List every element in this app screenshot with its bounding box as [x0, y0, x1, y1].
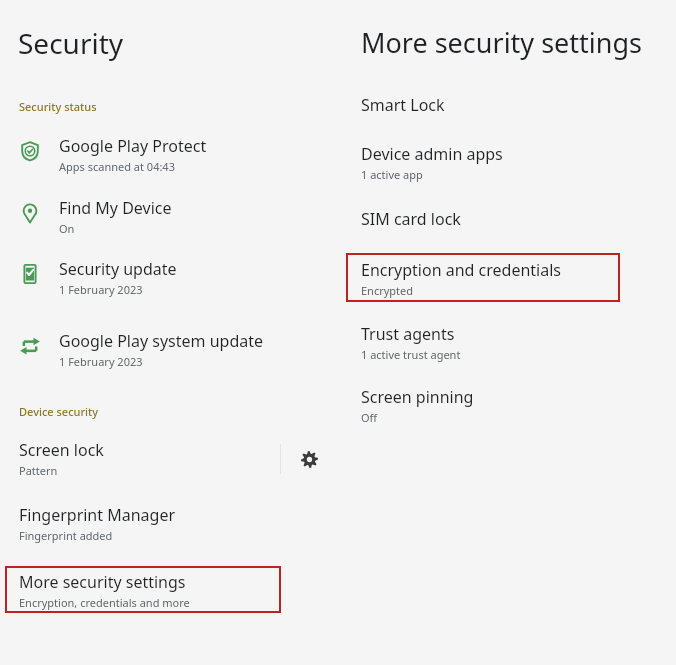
- staticText: Encrypted: [361, 283, 414, 298]
- staticText: Smart Lock: [361, 94, 445, 116]
- staticText: Fingerprint Manager: [19, 504, 176, 526]
- staticText: 1 February 2023: [59, 282, 143, 297]
- staticText: SIM card lock: [361, 208, 461, 230]
- staticText: Encryption, credentials and more: [19, 595, 190, 610]
- staticText: Google Play system update: [59, 330, 264, 352]
- staticText: Screen lock: [19, 439, 104, 461]
- staticText: Google Play Protect: [59, 135, 207, 157]
- button[interactable]: Find My Device: [0, 197, 320, 245]
- button[interactable]: Fingerprint Manager: [0, 501, 338, 547]
- button[interactable]: Google Play system update: [0, 330, 320, 378]
- staticText: Screen pinning: [361, 386, 474, 408]
- staticText: Encryption and credentials: [361, 259, 561, 281]
- staticText: More security settings: [19, 571, 186, 593]
- staticText: 1 active trust agent: [361, 347, 461, 362]
- button[interactable]: Trust agents: [338, 321, 668, 367]
- staticText: Security status: [19, 99, 97, 114]
- button[interactable]: Screen lock settings: [281, 436, 338, 482]
- button[interactable]: Screen lock: [0, 436, 280, 482]
- staticText: Device admin apps: [361, 143, 503, 165]
- staticText: Find My Device: [59, 197, 172, 219]
- staticText: 1 active app: [361, 167, 423, 182]
- button[interactable]: Security update: [0, 258, 320, 306]
- staticText: Security: [18, 24, 124, 62]
- button[interactable]: More security settings: [5, 566, 281, 613]
- staticText: On: [59, 221, 75, 236]
- button[interactable]: SIM card lock: [338, 206, 668, 240]
- staticText: Security update: [59, 258, 177, 280]
- button[interactable]: Encryption and credentials: [346, 253, 620, 302]
- staticText: Off: [361, 410, 378, 425]
- staticText: More security settings: [361, 24, 642, 61]
- staticText: Device security: [19, 404, 99, 419]
- staticText: Fingerprint added: [19, 528, 113, 543]
- button[interactable]: Smart Lock: [338, 92, 668, 126]
- button[interactable]: Screen pinning: [338, 384, 668, 430]
- staticText: Trust agents: [361, 323, 455, 345]
- staticText: Pattern: [19, 463, 58, 478]
- button[interactable]: Device admin apps: [338, 141, 668, 187]
- staticText: 1 February 2023: [59, 354, 143, 369]
- staticText: Apps scanned at 04:43: [59, 159, 175, 174]
- button[interactable]: Google Play Protect: [0, 135, 320, 183]
